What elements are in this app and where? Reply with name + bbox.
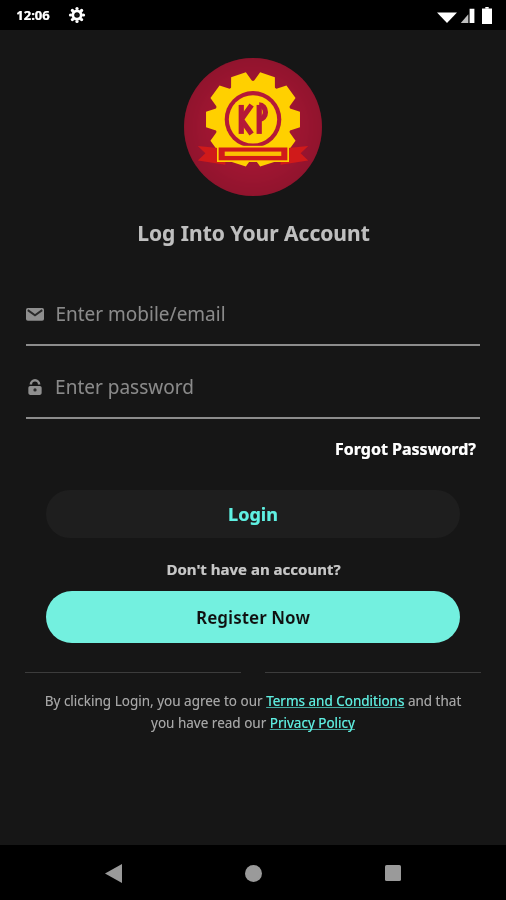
staticText: Enter password [55,374,194,400]
staticText: 12:06 [16,6,50,24]
staticText: Login [228,502,278,527]
staticText: Forgot Password? [335,438,476,460]
staticText: Register Now [196,606,310,629]
button[interactable]: Enter mobile/email [26,301,480,346]
button[interactable]: Register Now [46,591,460,643]
button[interactable]: Forgot Password? [331,435,480,463]
staticText: Enter mobile/email [55,301,226,327]
button[interactable]: Enter password [26,374,480,419]
staticText: By clicking Login, you agree to our Term… [38,692,468,732]
button[interactable]: Login [46,490,460,538]
button[interactable]: Back [95,855,131,891]
staticText: Don't have an account? [166,559,341,579]
button[interactable]: By clicking Login, you agree to our Term… [38,692,468,732]
staticText: Log Into Your Account [137,219,370,248]
button[interactable]: Recent apps [375,855,411,891]
button[interactable]: Home [235,855,271,891]
